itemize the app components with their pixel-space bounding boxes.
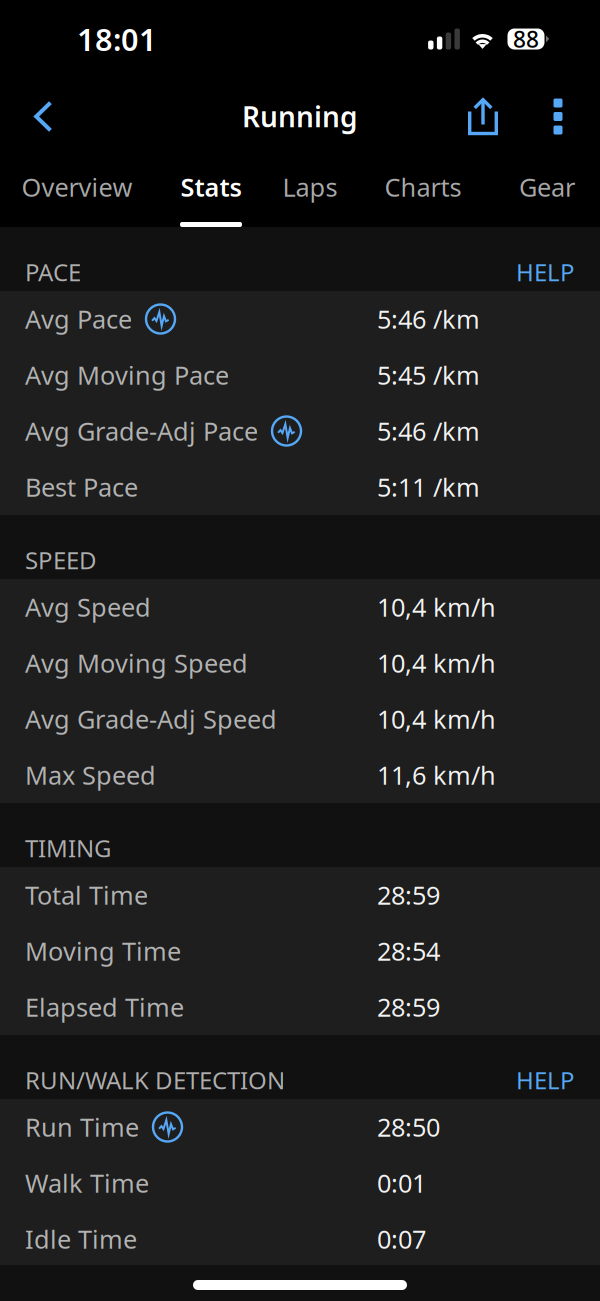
button[interactable]: HELP bbox=[516, 256, 575, 288]
staticText: 10,4 km/h bbox=[377, 646, 496, 680]
staticText: Best Pace bbox=[25, 470, 138, 504]
staticText: Walk Time bbox=[25, 1166, 149, 1200]
staticText: Avg Grade-Adj Speed bbox=[25, 702, 277, 736]
button[interactable]: Run Time bbox=[0, 1099, 600, 1155]
staticText: SPEED bbox=[25, 544, 97, 576]
staticText: Overview bbox=[21, 170, 132, 204]
button[interactable]: Stats bbox=[180, 155, 242, 227]
staticText: Gear bbox=[519, 170, 575, 204]
staticText: Total Time bbox=[25, 878, 148, 912]
staticText: 5:45 /km bbox=[377, 358, 480, 392]
staticText: 28:54 bbox=[377, 934, 440, 968]
button[interactable]: More options bbox=[535, 89, 581, 143]
button[interactable]: Moving Time bbox=[0, 923, 600, 979]
button[interactable]: Best Pace bbox=[0, 459, 600, 515]
staticText: Stats bbox=[180, 170, 241, 204]
button[interactable]: Avg Pace bbox=[0, 291, 600, 347]
button[interactable]: Total Time bbox=[0, 867, 600, 923]
staticText: 88 bbox=[513, 24, 539, 54]
staticText: 0:01 bbox=[377, 1166, 426, 1200]
staticText: 5:46 /km bbox=[377, 414, 480, 448]
button[interactable]: Share bbox=[457, 89, 509, 143]
button[interactable]: Max Speed bbox=[0, 747, 600, 803]
button[interactable]: Avg Moving Pace bbox=[0, 347, 600, 403]
staticText: Run Time bbox=[25, 1110, 139, 1144]
staticText: RUN/WALK DETECTION bbox=[25, 1064, 285, 1096]
staticText: 5:11 /km bbox=[377, 470, 480, 504]
staticText: Moving Time bbox=[25, 934, 181, 968]
staticText: Max Speed bbox=[25, 758, 156, 792]
staticText: Idle Time bbox=[25, 1222, 137, 1256]
staticText: 10,4 km/h bbox=[377, 590, 496, 624]
staticText: Laps bbox=[282, 170, 337, 204]
staticText: HELP bbox=[516, 256, 575, 288]
staticText: TIMING bbox=[25, 832, 111, 864]
staticText: PACE bbox=[25, 256, 81, 288]
button[interactable]: Avg Moving Speed bbox=[0, 635, 600, 691]
staticText: Avg Speed bbox=[25, 590, 151, 624]
staticText: 10,4 km/h bbox=[377, 702, 496, 736]
staticText: 28:50 bbox=[377, 1110, 440, 1144]
button[interactable]: Gear bbox=[519, 155, 575, 227]
button[interactable]: Elapsed Time bbox=[0, 979, 600, 1035]
button[interactable]: Laps bbox=[282, 155, 337, 227]
staticText: HELP bbox=[516, 1064, 575, 1096]
button[interactable]: Charts bbox=[384, 155, 461, 227]
staticText: 0:07 bbox=[377, 1222, 426, 1256]
button[interactable]: Overview bbox=[21, 155, 132, 227]
staticText: Running bbox=[242, 98, 358, 135]
staticText: Avg Grade-Adj Pace bbox=[25, 414, 258, 448]
staticText: 28:59 bbox=[377, 990, 440, 1024]
button[interactable]: Back bbox=[18, 89, 68, 143]
button[interactable]: Avg Speed bbox=[0, 579, 600, 635]
staticText: Avg Moving Speed bbox=[25, 646, 248, 680]
staticText: 11,6 km/h bbox=[377, 758, 496, 792]
button[interactable]: Avg Grade-Adj Pace bbox=[0, 403, 600, 459]
staticText: Charts bbox=[384, 170, 461, 204]
staticText: Elapsed Time bbox=[25, 990, 184, 1024]
button[interactable]: HELP bbox=[516, 1064, 575, 1096]
staticText: 28:59 bbox=[377, 878, 440, 912]
staticText: 5:46 /km bbox=[377, 302, 480, 336]
staticText: Avg Pace bbox=[25, 302, 132, 336]
staticText: 18:01 bbox=[77, 19, 157, 59]
button[interactable]: Avg Grade-Adj Speed bbox=[0, 691, 600, 747]
staticText: Avg Moving Pace bbox=[25, 358, 229, 392]
button[interactable]: Walk Time bbox=[0, 1155, 600, 1211]
button[interactable]: Idle Time bbox=[0, 1211, 600, 1267]
